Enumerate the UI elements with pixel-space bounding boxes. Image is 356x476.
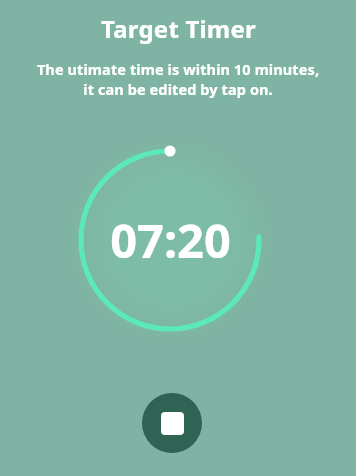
button[interactable]: 07:20 bbox=[60, 130, 280, 350]
button[interactable]: Stop timer bbox=[142, 393, 202, 453]
staticText: Target Timer bbox=[101, 12, 256, 45]
staticText: The utimate time is within 10 minutes, i… bbox=[10, 59, 346, 99]
staticText: 07:20 bbox=[110, 208, 231, 272]
